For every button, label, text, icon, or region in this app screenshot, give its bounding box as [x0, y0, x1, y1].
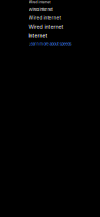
staticText: Wired internet — [28, 0, 50, 4]
staticText: Wired internet — [28, 15, 61, 20]
staticText: Learn more about speeds — [28, 42, 71, 46]
staticText: Wired internet — [28, 23, 63, 30]
staticText: Internet — [28, 33, 47, 39]
staticText: Wired internet — [28, 7, 52, 12]
